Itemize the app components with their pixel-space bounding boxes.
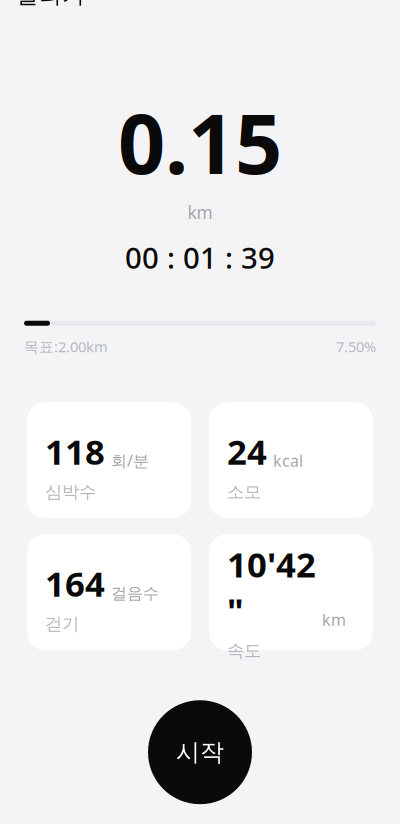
staticText: 0.15	[118, 87, 282, 197]
staticText: 속도	[227, 640, 261, 661]
staticText: 걷기	[45, 613, 79, 634]
staticText: kcal	[273, 450, 303, 471]
staticText: 7.50%	[336, 337, 376, 356]
staticText: km	[187, 201, 212, 224]
staticText: 소모	[227, 481, 261, 502]
staticText: km	[322, 609, 346, 630]
staticText: 118	[45, 428, 105, 474]
staticText: 164	[45, 560, 105, 606]
button[interactable]: 시작	[148, 700, 252, 804]
staticText: 10'42"	[227, 541, 316, 633]
staticText: 달리기	[16, 0, 85, 9]
staticText: 회/분	[111, 450, 149, 471]
staticText: 심박수	[45, 481, 96, 502]
staticText: 24	[227, 428, 267, 474]
staticText: 00 : 01 : 39	[125, 238, 275, 277]
staticText: 걸음수	[111, 584, 159, 603]
staticText: 목표:2.00km	[24, 337, 108, 356]
staticText: 시작	[176, 737, 224, 767]
